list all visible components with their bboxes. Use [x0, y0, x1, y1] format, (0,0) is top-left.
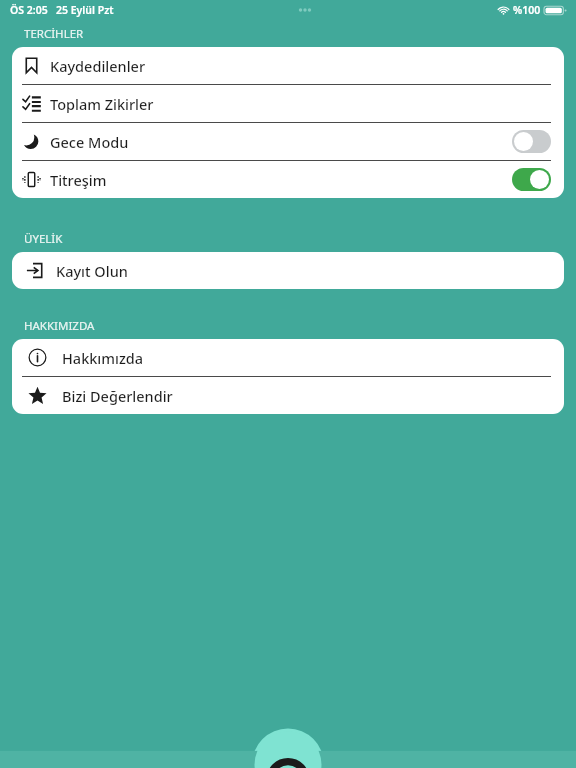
button[interactable]: Hakkımızda [12, 339, 564, 376]
staticText: Toplam Zikirler [50, 94, 551, 114]
button[interactable]: Gece Modu [12, 123, 564, 160]
staticText: ÖS 2:05 [10, 3, 48, 17]
button[interactable]: Gece Modu [512, 130, 551, 153]
button[interactable]: Titreşim [512, 168, 551, 191]
staticText: ÜYELİK [24, 231, 63, 247]
button[interactable]: Kaydedilenler [12, 47, 564, 84]
staticText: %100 [513, 3, 541, 17]
staticText: TERCİHLER [24, 26, 84, 42]
staticText: Bizi Değerlendir [62, 386, 551, 406]
staticText: Hakkımızda [62, 348, 551, 368]
button[interactable]: Titreşim [12, 161, 564, 198]
staticText: Kayıt Olun [56, 261, 551, 281]
staticText: 25 Eylül Pzt [56, 3, 114, 17]
staticText: Gece Modu [50, 132, 512, 152]
staticText: Kaydedilenler [50, 56, 551, 76]
staticText: Titreşim [50, 170, 512, 190]
button[interactable]: Kayıt Olun [12, 252, 564, 289]
button[interactable]: Toplam Zikirler [12, 85, 564, 122]
staticText: HAKKIMIZDA [24, 318, 95, 334]
button[interactable]: Bizi Değerlendir [12, 377, 564, 414]
